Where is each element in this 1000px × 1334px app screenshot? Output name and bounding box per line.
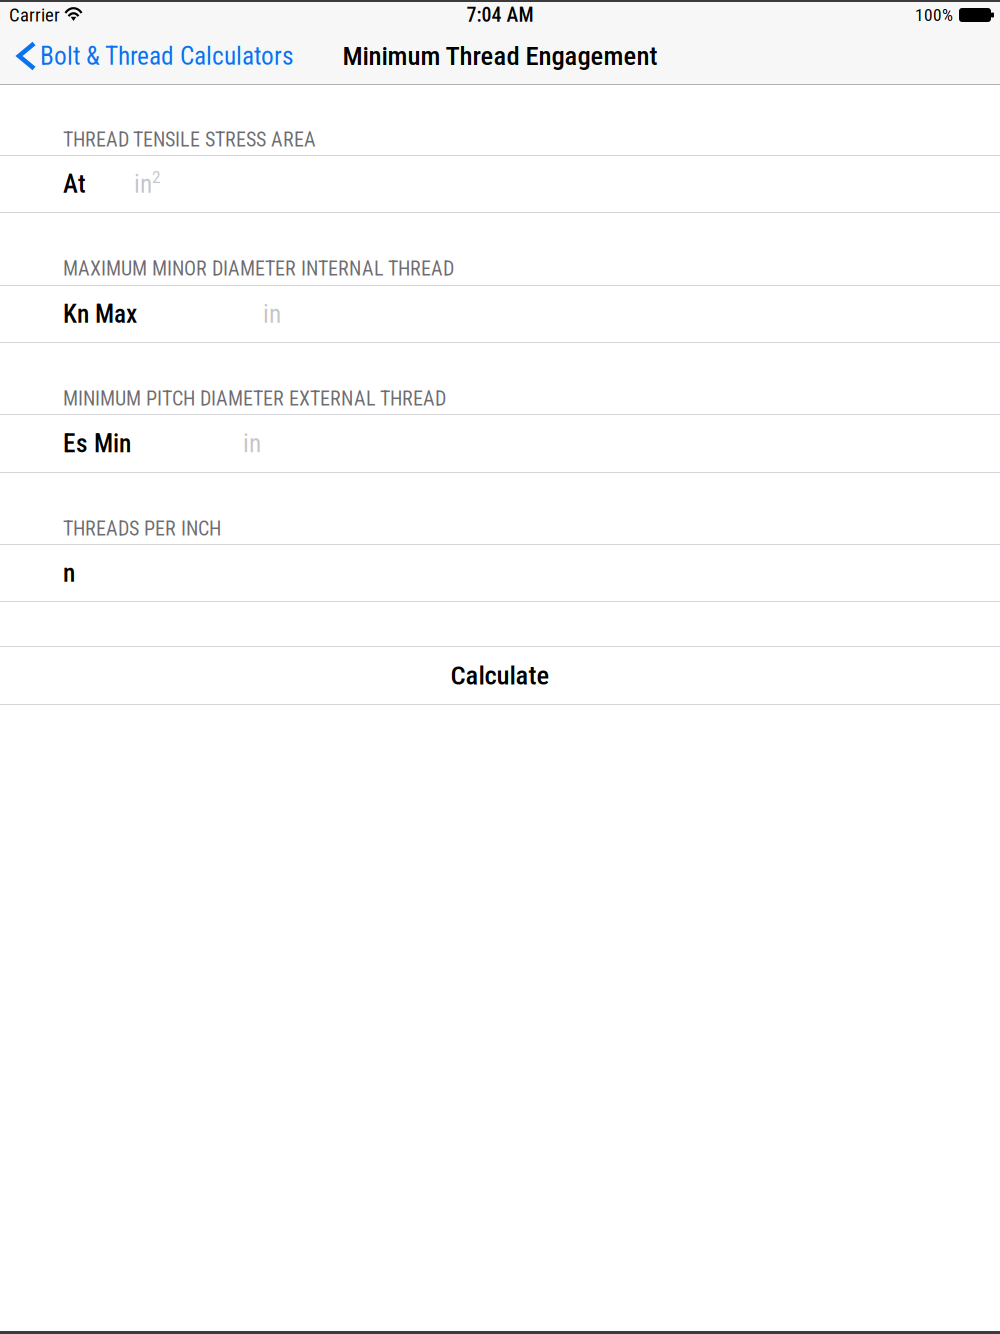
staticText: 7:04 AM: [466, 3, 533, 27]
staticText: in: [134, 169, 152, 199]
button[interactable]: At: [0, 156, 1000, 212]
button[interactable]: Bolt & Thread Calculators: [0, 28, 306, 84]
staticText: Kn Max: [63, 299, 137, 329]
staticText: in: [263, 299, 281, 329]
button[interactable]: n: [0, 545, 1000, 601]
staticText: 100%: [915, 5, 953, 25]
staticText: Minimum Thread Engagement: [342, 40, 657, 72]
staticText: MAXIMUM MINOR DIAMETER INTERNAL THREAD: [63, 257, 454, 280]
staticText: Calculate: [450, 660, 549, 691]
staticText: At: [63, 169, 86, 199]
staticText: THREADS PER INCH: [63, 517, 221, 540]
staticText: Es Min: [63, 429, 131, 458]
staticText: MINIMUM PITCH DIAMETER EXTERNAL THREAD: [63, 387, 446, 410]
staticText: in: [243, 429, 261, 458]
button[interactable]: Es Min: [0, 415, 1000, 472]
button[interactable]: Calculate: [0, 647, 1000, 704]
staticText: Bolt & Thread Calculators: [40, 41, 294, 71]
staticText: THREAD TENSILE STRESS AREA: [63, 128, 316, 151]
staticText: n: [63, 558, 75, 588]
staticText: 2: [152, 167, 161, 187]
staticText: Carrier: [9, 4, 60, 26]
button[interactable]: Kn Max: [0, 286, 1000, 342]
